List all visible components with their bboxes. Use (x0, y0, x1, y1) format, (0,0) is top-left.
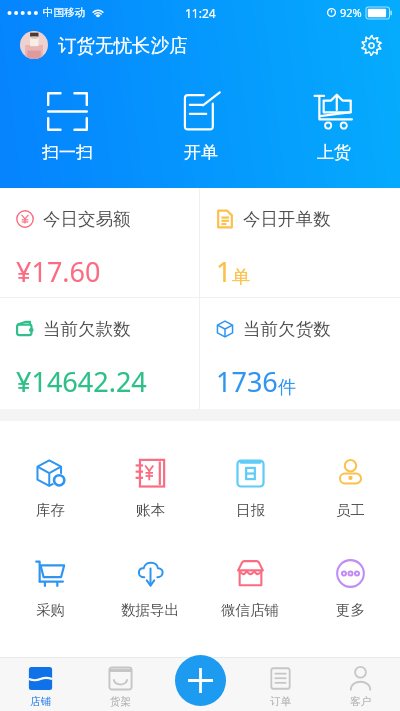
button[interactable]: 上货 (267, 92, 400, 163)
staticText: 订货无忧长沙店 (58, 34, 188, 57)
button[interactable]: 货架 (80, 657, 160, 711)
staticText: 1 (216, 253, 232, 290)
button[interactable]: 店铺 (0, 657, 80, 711)
button[interactable]: 采购 (0, 558, 100, 619)
staticText: 订单 (270, 695, 291, 708)
staticText: 数据导出 (121, 601, 179, 619)
staticText: 11:24 (185, 5, 216, 21)
staticText: 当前欠款数 (43, 318, 131, 340)
button[interactable]: Add (175, 655, 226, 706)
staticText: 件 (278, 376, 296, 399)
button[interactable]: 今日开单数 (200, 188, 400, 297)
button[interactable]: 当前欠款数 (0, 298, 199, 409)
button[interactable]: 更多 (300, 558, 400, 619)
button[interactable]: 员工 (300, 458, 400, 519)
button[interactable]: 日报 (200, 458, 300, 519)
staticText: 店铺 (30, 695, 51, 708)
staticText: 日报 (236, 501, 265, 519)
staticText: ¥14642.24 (16, 363, 147, 400)
staticText: 更多 (336, 601, 365, 619)
button[interactable]: Settings (356, 30, 386, 60)
staticText: 扫一扫 (42, 142, 93, 163)
button[interactable]: 客户 (320, 657, 400, 711)
staticText: 1736 (216, 363, 278, 400)
staticText: 今日开单数 (243, 208, 331, 230)
staticText: 货架 (110, 695, 131, 708)
staticText: 账本 (136, 501, 165, 519)
staticText: 客户 (350, 695, 371, 708)
staticText: 采购 (36, 601, 65, 619)
button[interactable]: 今日交易额 (0, 188, 199, 297)
staticText: 员工 (336, 501, 365, 519)
staticText: 单 (232, 266, 250, 289)
staticText: 上货 (317, 142, 351, 163)
staticText: 微信店铺 (221, 601, 279, 619)
button[interactable]: 订单 (240, 657, 320, 711)
staticText: 92% (340, 5, 362, 20)
staticText: 今日交易额 (43, 208, 131, 230)
staticText: ¥17.60 (16, 253, 101, 290)
button[interactable]: 当前欠货数 (200, 298, 400, 409)
button[interactable]: 扫一扫 (0, 92, 134, 163)
button[interactable]: 开单 (134, 92, 267, 163)
button[interactable]: 数据导出 (100, 558, 200, 619)
button[interactable]: 库存 (0, 458, 100, 519)
staticText: 中国移动 (43, 6, 85, 19)
staticText: 开单 (184, 142, 218, 163)
staticText: 库存 (36, 501, 65, 519)
staticText: 当前欠货数 (243, 318, 331, 340)
button[interactable]: 微信店铺 (200, 558, 300, 619)
button[interactable]: 账本 (100, 458, 200, 519)
